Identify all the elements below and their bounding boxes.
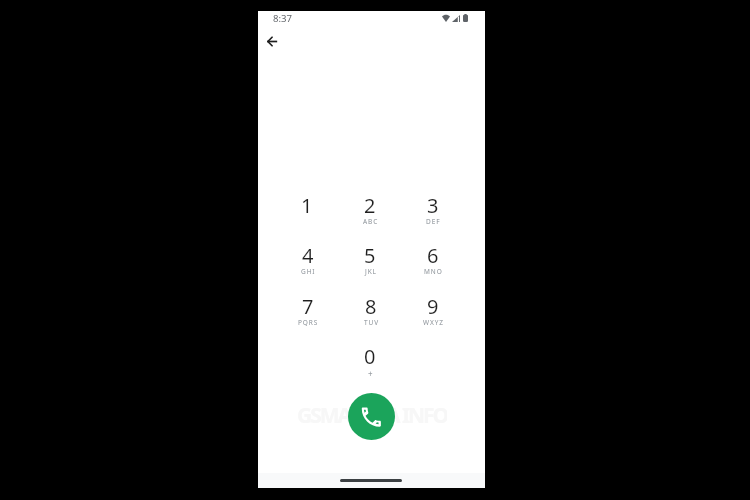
- button[interactable]: 3: [401, 187, 463, 237]
- button[interactable]: Home: [340, 479, 402, 482]
- staticText: MNO: [424, 267, 443, 276]
- staticText: WXYZ: [423, 318, 444, 327]
- button[interactable]: 5: [339, 237, 401, 287]
- button[interactable]: Call: [348, 393, 395, 440]
- staticText: 0: [364, 343, 376, 370]
- staticText: 3: [427, 192, 439, 219]
- staticText: 9: [427, 293, 439, 320]
- button[interactable]: Back: [259, 28, 285, 54]
- button[interactable]: 1: [276, 187, 338, 237]
- button[interactable]: 2: [339, 187, 401, 237]
- staticText: GHI: [301, 267, 316, 276]
- staticText: ABC: [363, 217, 379, 226]
- staticText: JKL: [365, 267, 377, 276]
- staticText: DEF: [426, 217, 441, 226]
- staticText: +: [368, 368, 373, 379]
- staticText: 8: [365, 293, 377, 320]
- staticText: 4: [302, 242, 314, 269]
- button[interactable]: 6: [401, 237, 463, 287]
- staticText: 7: [302, 293, 314, 320]
- staticText: 1: [301, 192, 313, 219]
- staticText: 2: [364, 192, 376, 219]
- button[interactable]: 4: [276, 237, 338, 287]
- staticText: 8:37: [273, 12, 293, 25]
- staticText: 6: [427, 242, 439, 269]
- button[interactable]: 0: [339, 338, 401, 388]
- button[interactable]: 9: [401, 288, 463, 338]
- button[interactable]: 7: [276, 288, 338, 338]
- staticText: GSMARENA INFO: [297, 401, 447, 429]
- staticText: TUV: [364, 318, 379, 327]
- staticText: PQRS: [298, 318, 319, 327]
- button[interactable]: 8: [339, 288, 401, 338]
- staticText: 5: [364, 242, 376, 269]
